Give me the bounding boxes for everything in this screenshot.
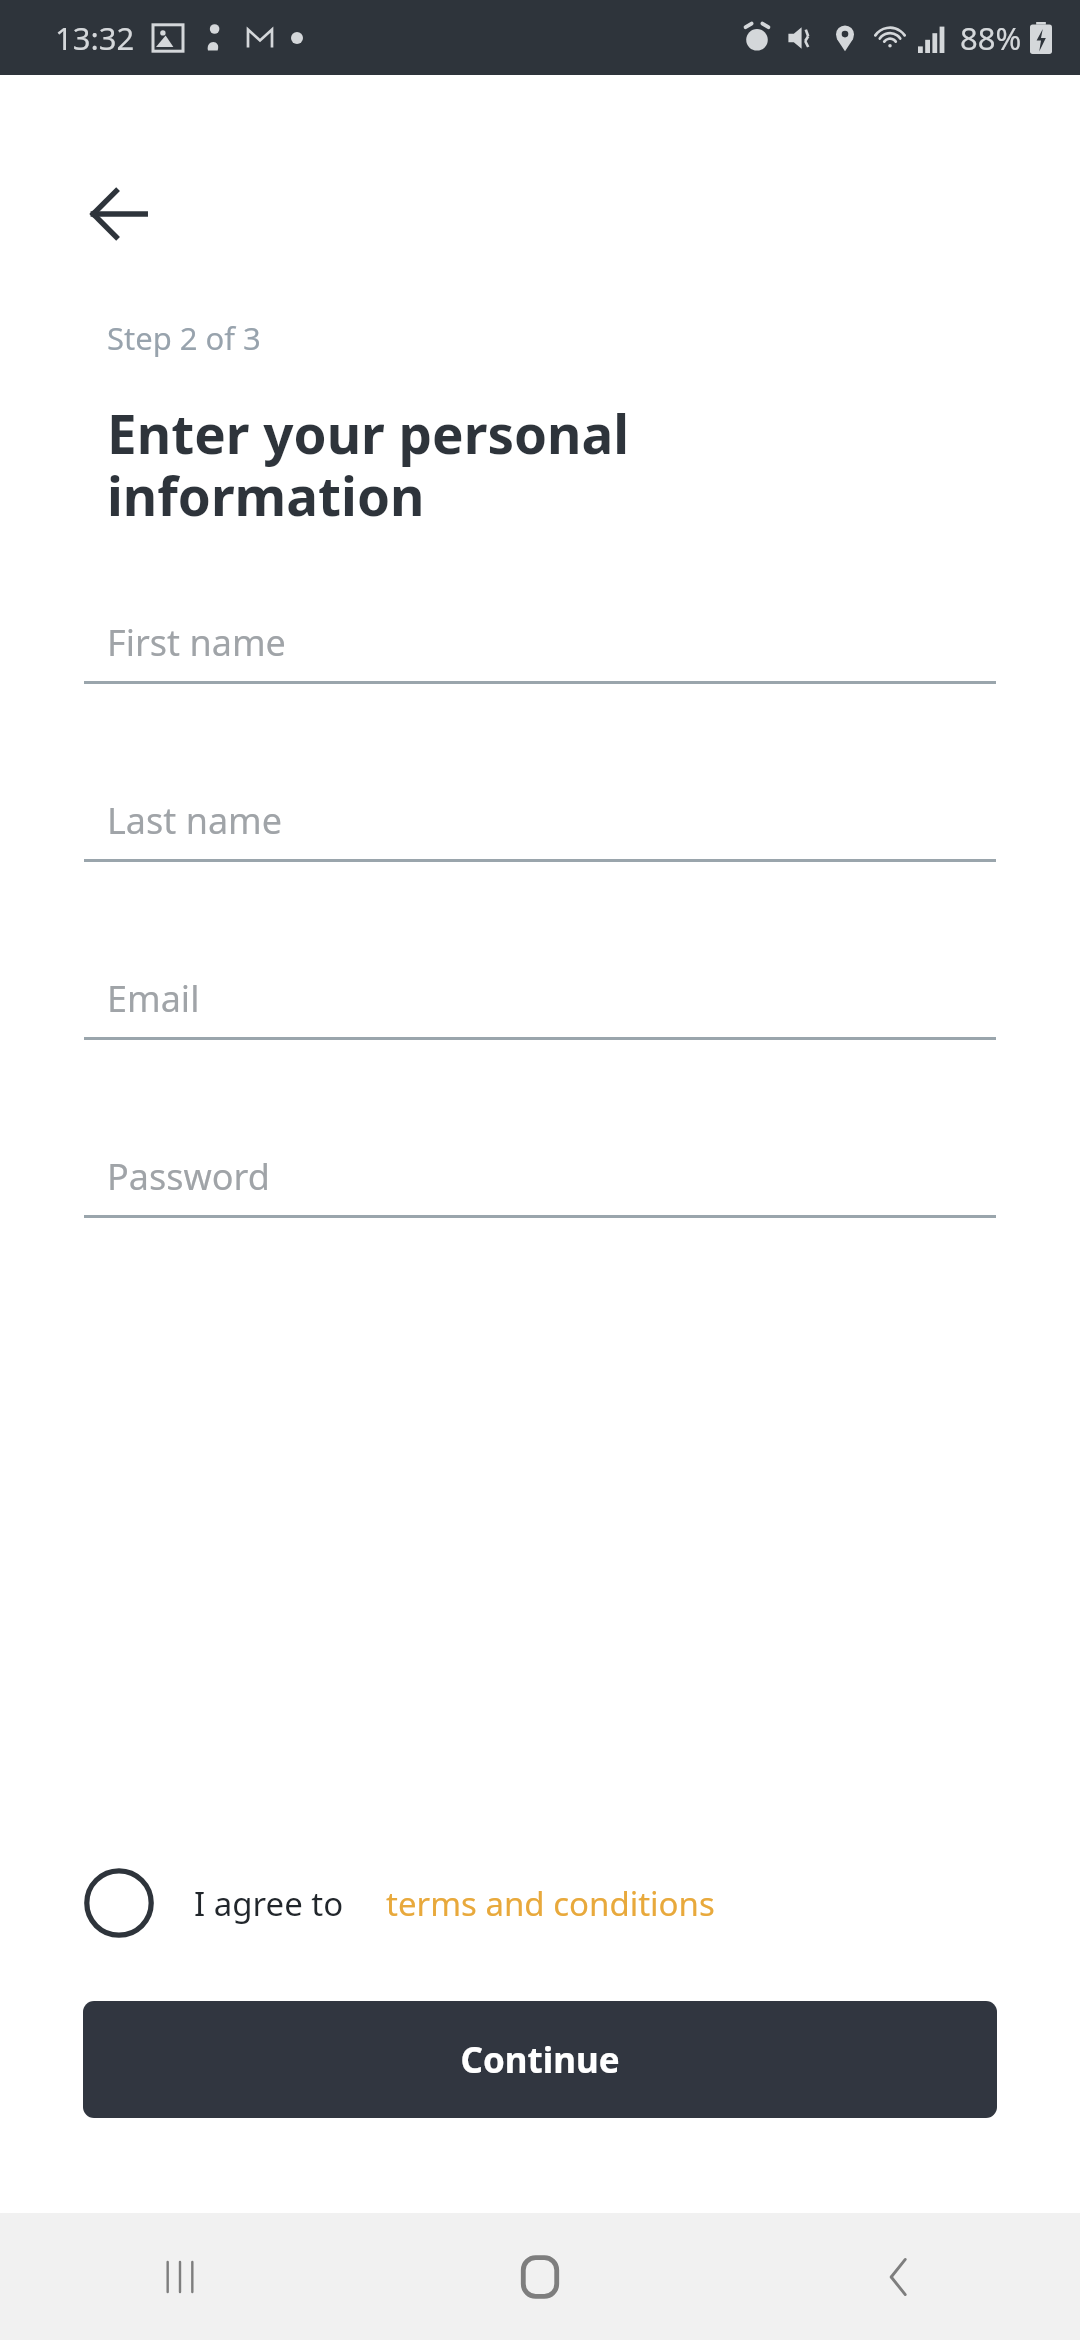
staticText: Last name: [107, 796, 283, 845]
staticText: Step 2 of 3: [107, 317, 261, 359]
button[interactable]: terms and conditions: [386, 1881, 715, 1926]
button[interactable]: Recents: [0, 2213, 360, 2340]
staticText: I agree to: [194, 1881, 344, 1926]
button[interactable]: First name: [84, 618, 996, 684]
button[interactable]: Email: [84, 974, 996, 1040]
staticText: Continue: [460, 2036, 620, 2084]
staticText: 88%: [960, 17, 1022, 59]
button[interactable]: Password: [84, 1152, 996, 1218]
button[interactable]: Last name: [84, 796, 996, 862]
staticText: 13:32: [55, 17, 135, 59]
staticText: Email: [107, 974, 200, 1023]
staticText: Password: [107, 1152, 270, 1201]
staticText: First name: [107, 618, 286, 667]
button[interactable]: Back: [72, 167, 166, 261]
button[interactable]: Continue: [83, 2001, 997, 2118]
button[interactable]: I agree to: [84, 1868, 1020, 1938]
button[interactable]: Back: [720, 2213, 1080, 2340]
staticText: terms and conditions: [386, 1881, 715, 1926]
button[interactable]: Home: [360, 2213, 720, 2340]
staticText: Enter your personal information: [107, 397, 630, 532]
